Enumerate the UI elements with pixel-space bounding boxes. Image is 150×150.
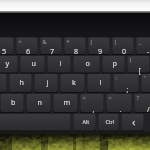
button[interactable] bbox=[0, 0, 150, 150]
